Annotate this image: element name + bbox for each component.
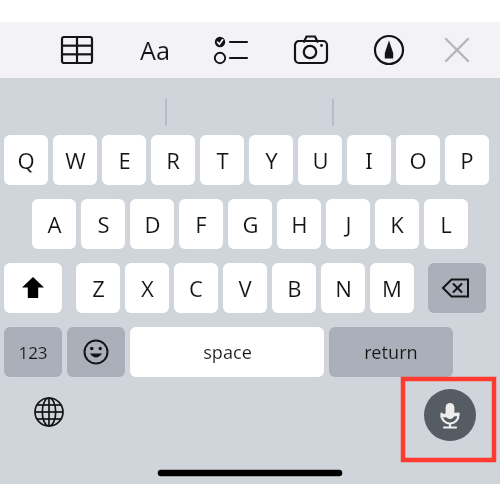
button[interactable]: Dictation	[424, 389, 476, 441]
button[interactable]: E	[102, 135, 146, 185]
button[interactable]: T	[200, 135, 244, 185]
staticText: I	[365, 145, 373, 175]
staticText: A	[47, 209, 62, 239]
button[interactable]: Camera	[272, 22, 350, 78]
staticText: Z	[92, 273, 105, 303]
button[interactable]: Insert table	[38, 22, 116, 78]
staticText: K	[390, 209, 404, 239]
staticText: E	[118, 145, 131, 175]
button[interactable]: B	[272, 263, 316, 313]
button[interactable]: Switch keyboard	[30, 393, 68, 431]
staticText: B	[287, 273, 302, 303]
button[interactable]: O	[396, 135, 440, 185]
staticText: 123	[18, 341, 48, 364]
button[interactable]: Y	[249, 135, 293, 185]
staticText: N	[335, 273, 352, 303]
staticText: U	[312, 145, 329, 175]
staticText: O	[409, 145, 427, 175]
staticText: X	[141, 273, 154, 303]
button[interactable]: space	[130, 327, 324, 377]
staticText: T	[216, 145, 229, 175]
staticText: M	[382, 273, 402, 303]
button[interactable]: Close	[428, 22, 486, 78]
staticText: return	[364, 340, 418, 365]
staticText: C	[189, 273, 203, 303]
button[interactable]: A	[32, 199, 76, 249]
button[interactable]: P	[445, 135, 489, 185]
button[interactable]: L	[424, 199, 468, 249]
staticText: S	[97, 209, 110, 239]
staticText: V	[238, 273, 252, 303]
staticText: Y	[265, 145, 278, 175]
staticText: G	[242, 209, 259, 239]
button[interactable]: Shift	[4, 263, 62, 313]
button[interactable]: G	[228, 199, 272, 249]
staticText: J	[345, 209, 352, 239]
button[interactable]: U	[298, 135, 342, 185]
button[interactable]: H	[277, 199, 321, 249]
staticText: L	[440, 209, 452, 239]
button[interactable]: S	[81, 199, 125, 249]
button[interactable]: Q	[4, 135, 48, 185]
staticText: space	[203, 340, 252, 365]
button[interactable]: K	[375, 199, 419, 249]
staticText: R	[166, 145, 180, 175]
staticText: F	[195, 209, 207, 239]
staticText: P	[460, 145, 474, 175]
button[interactable]: Markup	[350, 22, 428, 78]
button[interactable]: return	[329, 327, 453, 377]
button[interactable]: J	[326, 199, 370, 249]
button[interactable]: I	[347, 135, 391, 185]
staticText: W	[65, 145, 86, 175]
button[interactable]: V	[223, 263, 267, 313]
button[interactable]: X	[125, 263, 169, 313]
button[interactable]: M	[370, 263, 414, 313]
button[interactable]: Text formatting	[116, 22, 194, 78]
button[interactable]: 123	[4, 327, 62, 377]
button[interactable]: C	[174, 263, 218, 313]
button[interactable]: W	[53, 135, 97, 185]
button[interactable]: F	[179, 199, 223, 249]
button[interactable]: D	[130, 199, 174, 249]
button[interactable]: Z	[76, 263, 120, 313]
button[interactable]: N	[321, 263, 365, 313]
button[interactable]: Backspace	[428, 263, 486, 313]
button[interactable]: Checklist	[194, 22, 272, 78]
button[interactable]: R	[151, 135, 195, 185]
staticText: Aa	[140, 33, 171, 67]
staticText: H	[291, 209, 308, 239]
staticText: Q	[17, 145, 35, 175]
staticText: D	[144, 209, 161, 239]
button[interactable]: Emoji	[67, 327, 125, 377]
